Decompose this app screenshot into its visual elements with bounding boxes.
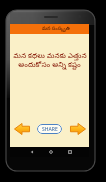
button[interactable]: Previous <box>14 123 30 135</box>
staticText: SHARE <box>42 126 58 133</box>
button[interactable]: Recents <box>66 148 74 156</box>
button[interactable]: Home <box>47 148 55 156</box>
staticText: మన సంస్కృతి <box>42 25 70 32</box>
button[interactable]: Back <box>28 148 36 156</box>
button[interactable]: మన సంస్కృతి <box>10 24 89 34</box>
button[interactable]: Next <box>70 123 86 135</box>
staticText: మన కథలు మనకు ఎత్తున <box>13 51 87 62</box>
button[interactable]: SHARE <box>37 124 62 134</box>
staticText: అందుకోసం అన్ని కష్టం <box>18 60 81 71</box>
